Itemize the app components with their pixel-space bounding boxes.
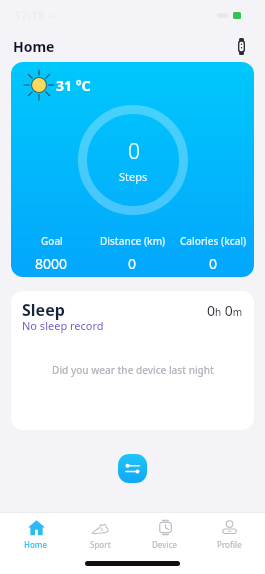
button[interactable]: Sport [72,515,128,551]
button[interactable]: My device [229,34,253,58]
staticText: 0h 0m [207,301,243,320]
button[interactable]: Profile [201,515,257,551]
button[interactable]: Home [8,515,64,551]
staticText: No sleep record [22,318,104,333]
staticText: Home [13,37,55,56]
staticText: 0 [128,254,137,273]
staticText: 0 [209,254,218,273]
staticText: 0 [128,137,140,166]
staticText: Calories (kcal) [180,234,247,248]
staticText: Goal [41,234,63,248]
staticText: 8000 [35,254,68,273]
staticText: Distance (km) [100,234,166,248]
button[interactable]: Sleep [11,291,254,430]
staticText: Steps [119,169,148,184]
staticText: Sport [90,539,111,550]
staticText: Sleep [22,299,65,321]
button[interactable]: Device [137,515,193,551]
staticText: Device [152,539,178,550]
staticText: Did you wear the device last night [52,363,214,377]
button[interactable]: 31 °C [11,62,254,277]
button[interactable]: Adjust settings [118,454,147,483]
staticText: Profile [217,539,242,550]
staticText: 31 °C [56,76,91,95]
staticText: Home [24,539,48,550]
